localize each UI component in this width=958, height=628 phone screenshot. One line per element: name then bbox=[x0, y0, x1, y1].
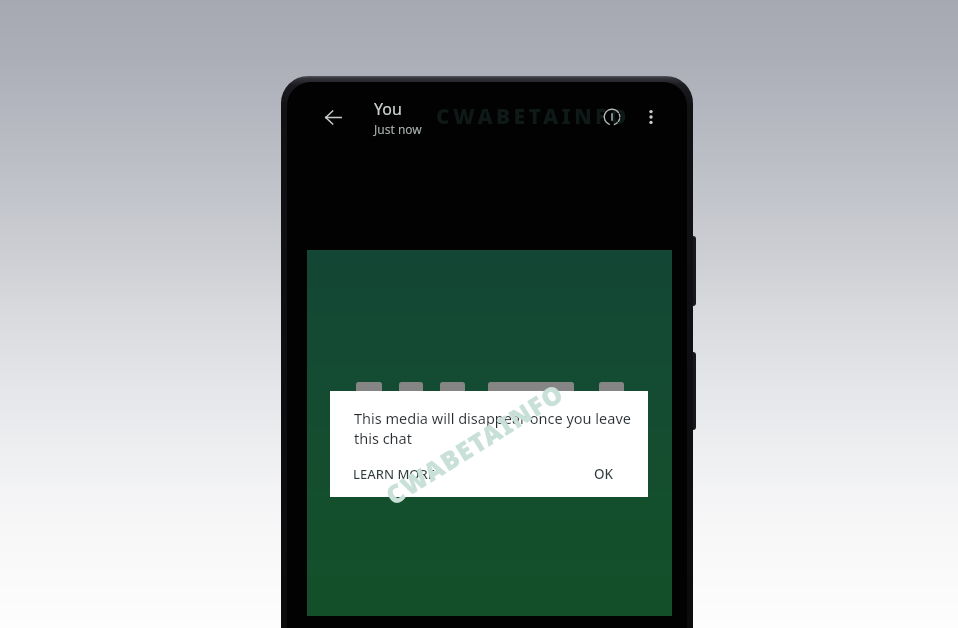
button[interactable]: More options bbox=[635, 101, 667, 133]
staticText: LEARN MORE bbox=[353, 465, 435, 483]
staticText: This media will disappear once you leave… bbox=[354, 408, 640, 448]
staticText: OK bbox=[594, 465, 614, 483]
button[interactable]: OK bbox=[589, 459, 619, 489]
staticText: Just now bbox=[374, 121, 422, 137]
button[interactable]: Back bbox=[319, 103, 347, 131]
button[interactable]: View once bbox=[596, 101, 628, 133]
button[interactable]: LEARN MORE bbox=[348, 459, 440, 489]
staticText: You bbox=[374, 98, 402, 120]
staticText: CWABETAINFO bbox=[436, 102, 630, 131]
